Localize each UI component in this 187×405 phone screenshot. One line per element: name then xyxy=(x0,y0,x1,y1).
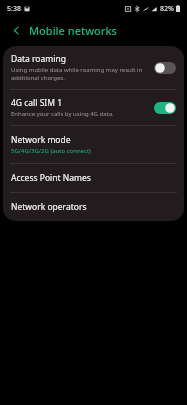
button[interactable]: Back xyxy=(7,21,25,39)
button[interactable]: Network operators xyxy=(3,193,184,221)
button[interactable]: Network mode xyxy=(3,126,184,163)
staticText: 5:38 xyxy=(7,4,21,14)
staticText: Enhance your calls by using 4G data. xyxy=(11,110,114,118)
button[interactable]: On xyxy=(154,102,176,114)
button[interactable]: Data roaming xyxy=(3,46,184,89)
staticText: Network mode xyxy=(11,134,71,146)
button[interactable]: 4G call SIM 1 xyxy=(3,90,184,125)
button[interactable]: Access Point Names xyxy=(3,164,184,192)
staticText: 4G call SIM 1 xyxy=(11,97,63,109)
staticText: Data roaming xyxy=(11,53,66,65)
staticText: 82% xyxy=(160,4,174,14)
staticText: Using mobile data while roaming may resu… xyxy=(11,66,143,82)
staticText: Network operators xyxy=(11,201,87,213)
button[interactable]: Off xyxy=(154,62,176,74)
staticText: Mobile networks xyxy=(29,23,117,38)
staticText: 5G/4G/3G/2G (auto connect) xyxy=(11,147,91,155)
staticText: Access Point Names xyxy=(11,172,91,184)
